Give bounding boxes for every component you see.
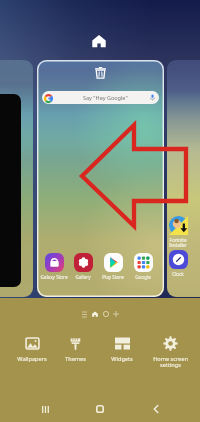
staticText: Google (135, 274, 151, 280)
button[interactable]: App list page (79, 309, 89, 319)
button[interactable]: Galaxy Store (39, 253, 69, 280)
button[interactable]: Widgets (97, 331, 147, 363)
staticText: Say "Hey Google" (83, 94, 128, 101)
button[interactable]: Home screen (92, 34, 106, 48)
button[interactable]: Add page (111, 309, 121, 319)
staticText: Galaxy Store (40, 274, 68, 280)
button[interactable]: Clock (167, 250, 200, 277)
button[interactable]: Home screen settings (145, 331, 195, 369)
button[interactable]: Fortnite Installer (167, 216, 200, 249)
button[interactable]: Recents (31, 395, 59, 422)
button[interactable]: Themes (50, 331, 100, 363)
staticText: Wallpapers (17, 355, 47, 363)
button[interactable]: Back (142, 395, 170, 422)
button[interactable]: Say "Hey Google" (42, 91, 159, 104)
staticText: Fortnite Installer (169, 237, 187, 249)
button[interactable]: Gallery (68, 253, 98, 280)
staticText: Clock (172, 271, 184, 277)
button[interactable]: Page 2 (101, 309, 111, 319)
button[interactable]: Play Store (98, 253, 128, 280)
staticText: Gallery (75, 274, 91, 280)
button[interactable]: Wallpapers (7, 331, 57, 363)
button[interactable]: Google (128, 253, 158, 280)
staticText: Widgets (111, 355, 133, 363)
button[interactable]: Remove page (94, 66, 107, 79)
staticText: Themes (65, 355, 86, 363)
staticText: Home screen settings (153, 355, 188, 369)
staticText: Play Store (102, 274, 124, 280)
button[interactable]: Home (86, 395, 114, 422)
button[interactable]: Home page (90, 309, 100, 319)
